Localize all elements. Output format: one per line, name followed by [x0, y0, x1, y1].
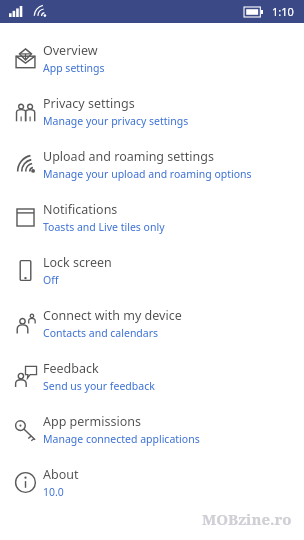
staticText: MOBzine.ro	[202, 509, 292, 528]
staticText: Toasts and Live tiles only	[43, 220, 165, 234]
button[interactable]: App permissions	[0, 403, 304, 456]
button[interactable]: Overview	[0, 32, 304, 85]
staticText: Connect with my device	[43, 307, 182, 324]
staticText: App settings	[43, 61, 105, 75]
staticText: App permissions	[43, 413, 141, 430]
button[interactable]: Notifications	[0, 191, 304, 244]
staticText: Manage your upload and roaming options	[43, 167, 252, 181]
staticText: Off	[43, 273, 59, 287]
staticText: Upload and roaming settings	[43, 148, 214, 165]
staticText: Privacy settings	[43, 95, 135, 112]
staticText: Manage connected applications	[43, 432, 200, 446]
staticText: About	[43, 466, 79, 483]
staticText: 10.0	[43, 485, 64, 499]
staticText: Notifications	[43, 201, 118, 218]
button[interactable]: Feedback	[0, 350, 304, 403]
staticText: Send us your feedback	[43, 379, 155, 393]
button[interactable]: Privacy settings	[0, 85, 304, 138]
staticText: Overview	[43, 42, 98, 59]
button[interactable]: Lock screen	[0, 244, 304, 297]
button[interactable]: Upload and roaming settings	[0, 138, 304, 191]
staticText: Contacts and calendars	[43, 326, 159, 340]
staticText: Feedback	[43, 360, 99, 377]
button[interactable]: About	[0, 456, 304, 509]
staticText: Lock screen	[43, 254, 112, 271]
button[interactable]: Connect with my device	[0, 297, 304, 350]
staticText: 1:10	[272, 4, 294, 19]
staticText: Manage your privacy settings	[43, 114, 189, 128]
